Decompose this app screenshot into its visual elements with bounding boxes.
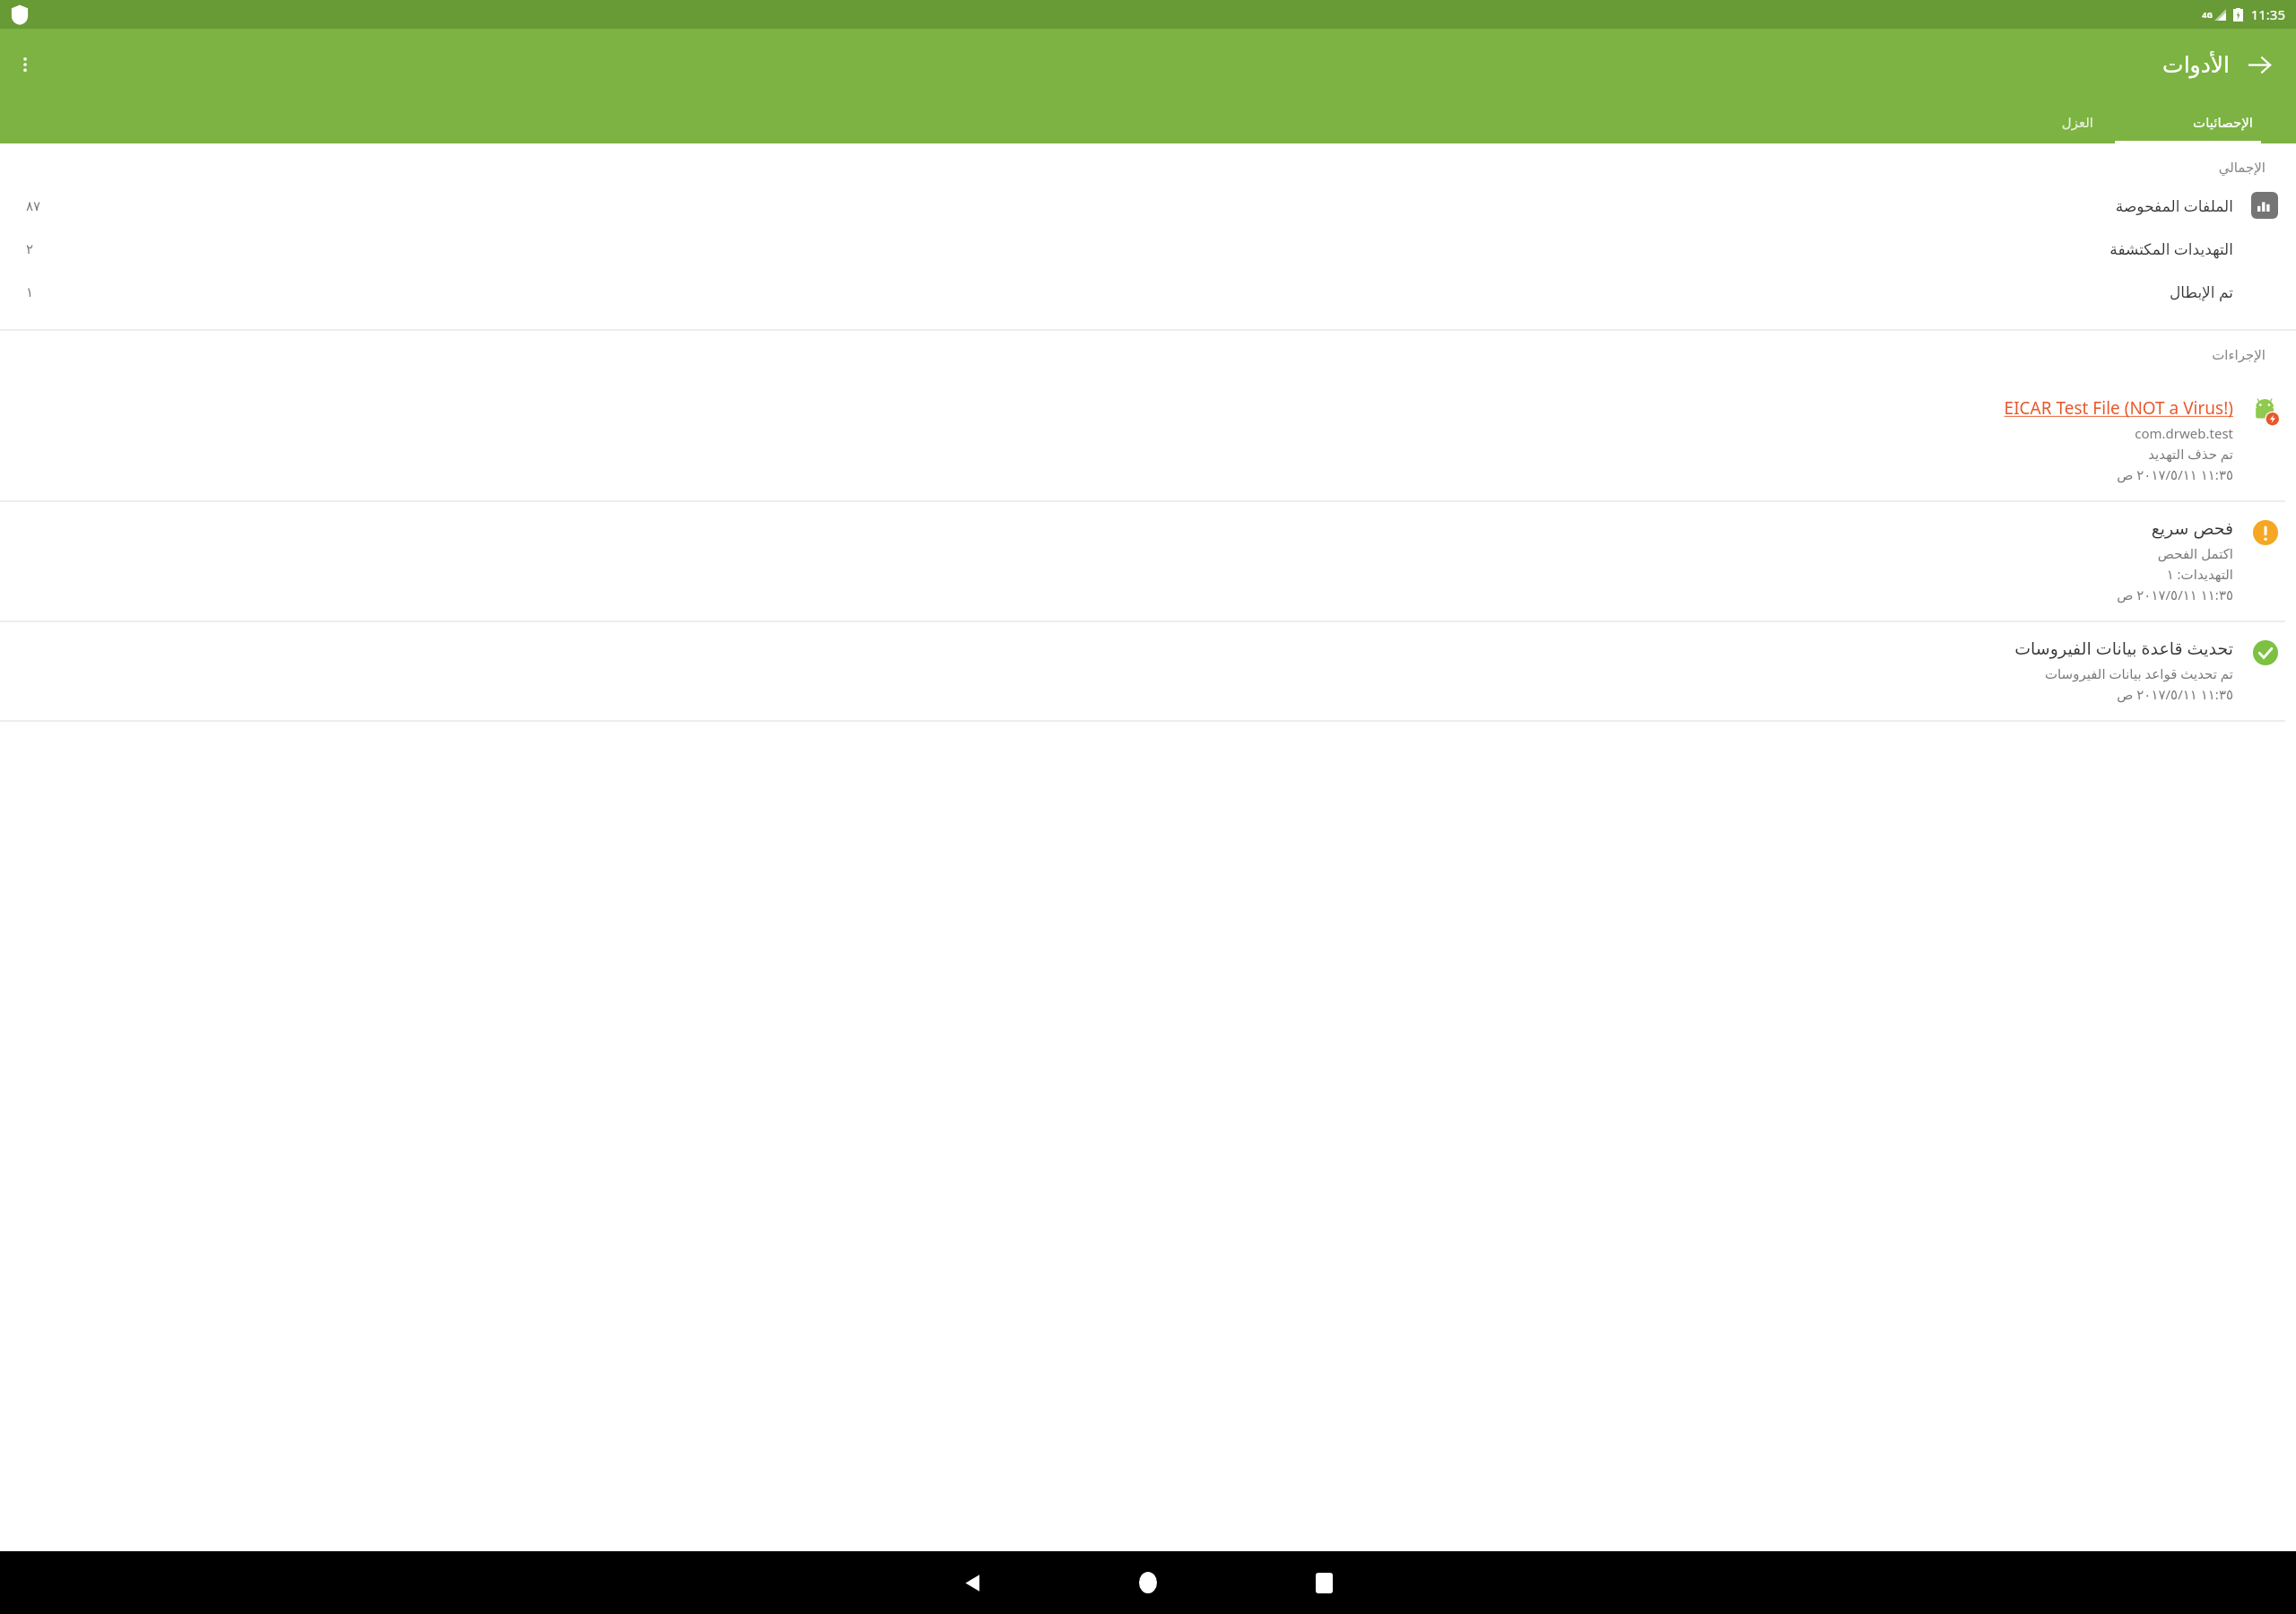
staticText: التهديدات المكتشفة xyxy=(2109,239,2233,259)
staticText: ٨٧ xyxy=(25,198,40,213)
staticText: 4G xyxy=(2202,9,2213,20)
staticText: ٢ xyxy=(25,241,33,256)
staticText: EICAR Test File (NOT a Virus!) xyxy=(2004,396,2233,420)
button[interactable]: EICAR Test File (NOT a Virus!) xyxy=(0,382,2296,500)
button[interactable]: العزل xyxy=(2005,100,2150,143)
staticText: com.drweb.test xyxy=(2135,424,2233,442)
button[interactable]: فحص سريع xyxy=(0,502,2296,620)
button[interactable]: ٢ xyxy=(0,227,2296,270)
button[interactable]: Back xyxy=(2230,35,2289,94)
staticText: تم الإبطال xyxy=(2169,282,2233,302)
staticText: الإحصائيات xyxy=(2193,115,2253,130)
button[interactable]: ٨٧ xyxy=(0,184,2296,227)
staticText: العزل xyxy=(2061,115,2093,130)
staticText: تم حذف التهديد xyxy=(2148,445,2233,463)
staticText: تحديث قاعدة بيانات الفيروسات xyxy=(2014,637,2233,660)
staticText: تم تحديث قواعد بيانات الفيروسات xyxy=(2044,664,2233,682)
staticText: ١١:٣٥ ٢٠١٧/٥/١١ ص xyxy=(2117,586,2233,603)
button[interactable]: Recent apps xyxy=(1294,1553,1353,1612)
staticText: الإجمالي xyxy=(2218,160,2266,175)
button[interactable]: Back xyxy=(943,1553,1002,1612)
button[interactable]: More options xyxy=(0,39,50,90)
staticText: ١١:٣٥ ٢٠١٧/٥/١١ ص xyxy=(2117,465,2233,483)
staticText: فحص سريع xyxy=(2151,516,2233,540)
staticText: اكتمل الفحص xyxy=(2157,544,2233,562)
staticText: 11:35 xyxy=(2250,5,2285,23)
button[interactable]: ١ xyxy=(0,270,2296,313)
staticText: ١١:٣٥ ٢٠١٧/٥/١١ ص xyxy=(2117,685,2233,703)
button[interactable]: الإحصائيات xyxy=(2150,100,2296,143)
staticText: الإجراءات xyxy=(2212,347,2266,362)
staticText: ١ xyxy=(25,284,33,299)
staticText: التهديدات: ١ xyxy=(2166,565,2233,583)
button[interactable]: تحديث قاعدة بيانات الفيروسات xyxy=(0,622,2296,720)
button[interactable]: Home xyxy=(1118,1553,1178,1612)
staticText: الملفات المفحوصة xyxy=(2115,195,2233,216)
staticText: الأدوات xyxy=(2162,52,2230,78)
